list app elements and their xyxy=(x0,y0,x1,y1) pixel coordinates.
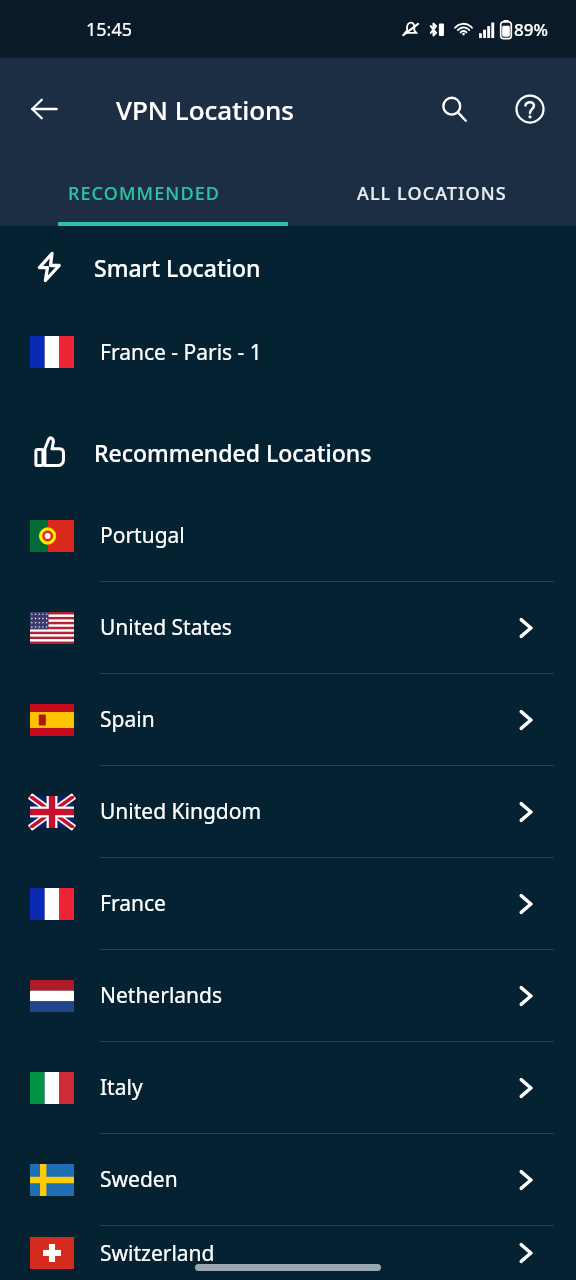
staticText: Spain xyxy=(100,705,494,734)
staticText: Switzerland xyxy=(100,1239,494,1268)
button[interactable]: Open Switzerland xyxy=(494,1226,558,1280)
button[interactable]: Spain xyxy=(0,674,576,765)
staticText: United States xyxy=(100,613,494,642)
button[interactable]: Search xyxy=(426,81,482,137)
button[interactable]: Open Sweden xyxy=(494,1148,558,1212)
button[interactable]: Italy xyxy=(0,1042,576,1133)
button[interactable]: France - Paris - 1 xyxy=(0,308,576,396)
button[interactable]: ALL LOCATIONS xyxy=(288,160,576,226)
staticText: VPN Locations xyxy=(116,92,294,127)
staticText: Sweden xyxy=(100,1165,494,1194)
button[interactable]: France xyxy=(0,858,576,949)
staticText: 89% xyxy=(514,18,548,41)
button[interactable]: Open Spain xyxy=(494,688,558,752)
button[interactable]: Back xyxy=(16,81,72,137)
button[interactable]: Help xyxy=(502,81,558,137)
button[interactable]: Open United Kingdom xyxy=(494,780,558,844)
staticText: 15:45 xyxy=(86,17,133,42)
staticText: United Kingdom xyxy=(100,797,494,826)
button[interactable]: Open France xyxy=(494,872,558,936)
button[interactable]: Sweden xyxy=(0,1134,576,1225)
button[interactable]: Open Italy xyxy=(494,1056,558,1120)
staticText: Portugal xyxy=(100,521,558,550)
button[interactable]: Netherlands xyxy=(0,950,576,1041)
button[interactable]: Open United States xyxy=(494,596,558,660)
button[interactable]: Recommended Locations xyxy=(0,414,576,490)
staticText: Smart Location xyxy=(94,252,261,283)
button[interactable]: Switzerland xyxy=(0,1226,576,1280)
staticText: ALL LOCATIONS xyxy=(357,181,507,206)
staticText: Recommended Locations xyxy=(94,437,372,468)
button[interactable]: Open Netherlands xyxy=(494,964,558,1028)
staticText: Netherlands xyxy=(100,981,494,1010)
staticText: RECOMMENDED xyxy=(68,181,221,206)
staticText: France xyxy=(100,889,494,918)
staticText: France - Paris - 1 xyxy=(100,338,262,367)
button[interactable]: United Kingdom xyxy=(0,766,576,857)
staticText: Italy xyxy=(100,1073,494,1102)
button[interactable]: RECOMMENDED xyxy=(0,160,288,226)
button[interactable]: United States xyxy=(0,582,576,673)
button[interactable]: Smart Location xyxy=(0,226,576,308)
button[interactable]: Portugal xyxy=(0,490,576,581)
